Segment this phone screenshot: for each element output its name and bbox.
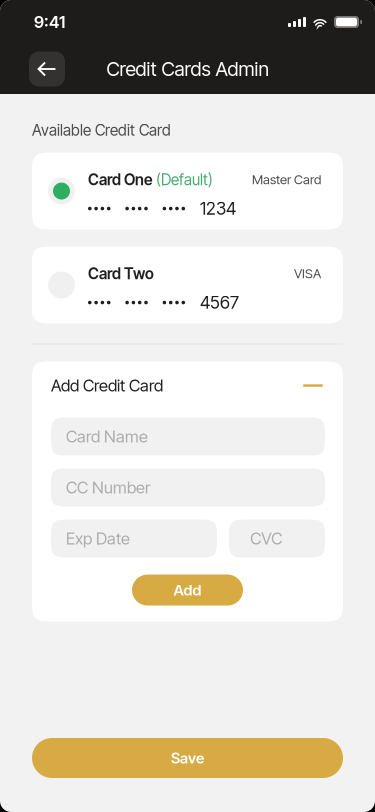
- staticText: Save: [171, 749, 204, 767]
- staticText: (Default): [156, 170, 213, 189]
- staticText: Add: [173, 581, 201, 599]
- staticText: 1234: [200, 198, 236, 219]
- staticText: CVC: [250, 528, 282, 548]
- staticText: CC Number: [66, 477, 150, 497]
- staticText: Card Name: [66, 426, 148, 446]
- button[interactable]: Add: [132, 575, 243, 606]
- staticText: Credit Cards Admin: [106, 57, 268, 81]
- staticText: Exp Date: [66, 528, 130, 548]
- button[interactable]: Collapse: [302, 376, 324, 396]
- button[interactable]: Back: [29, 51, 65, 86]
- staticText: VISA: [294, 266, 321, 281]
- staticText: Master Card: [252, 172, 321, 187]
- button[interactable]: Card Two: [32, 247, 343, 324]
- button[interactable]: Save: [32, 738, 343, 778]
- staticText: 4567: [200, 292, 239, 313]
- button[interactable]: Card One: [32, 153, 343, 230]
- staticText: 9:41: [34, 12, 65, 32]
- staticText: Card Two: [88, 264, 154, 283]
- staticText: Card One: [88, 170, 152, 189]
- staticText: Add Credit Card: [51, 375, 163, 395]
- staticText: Available Credit Card: [32, 121, 171, 140]
